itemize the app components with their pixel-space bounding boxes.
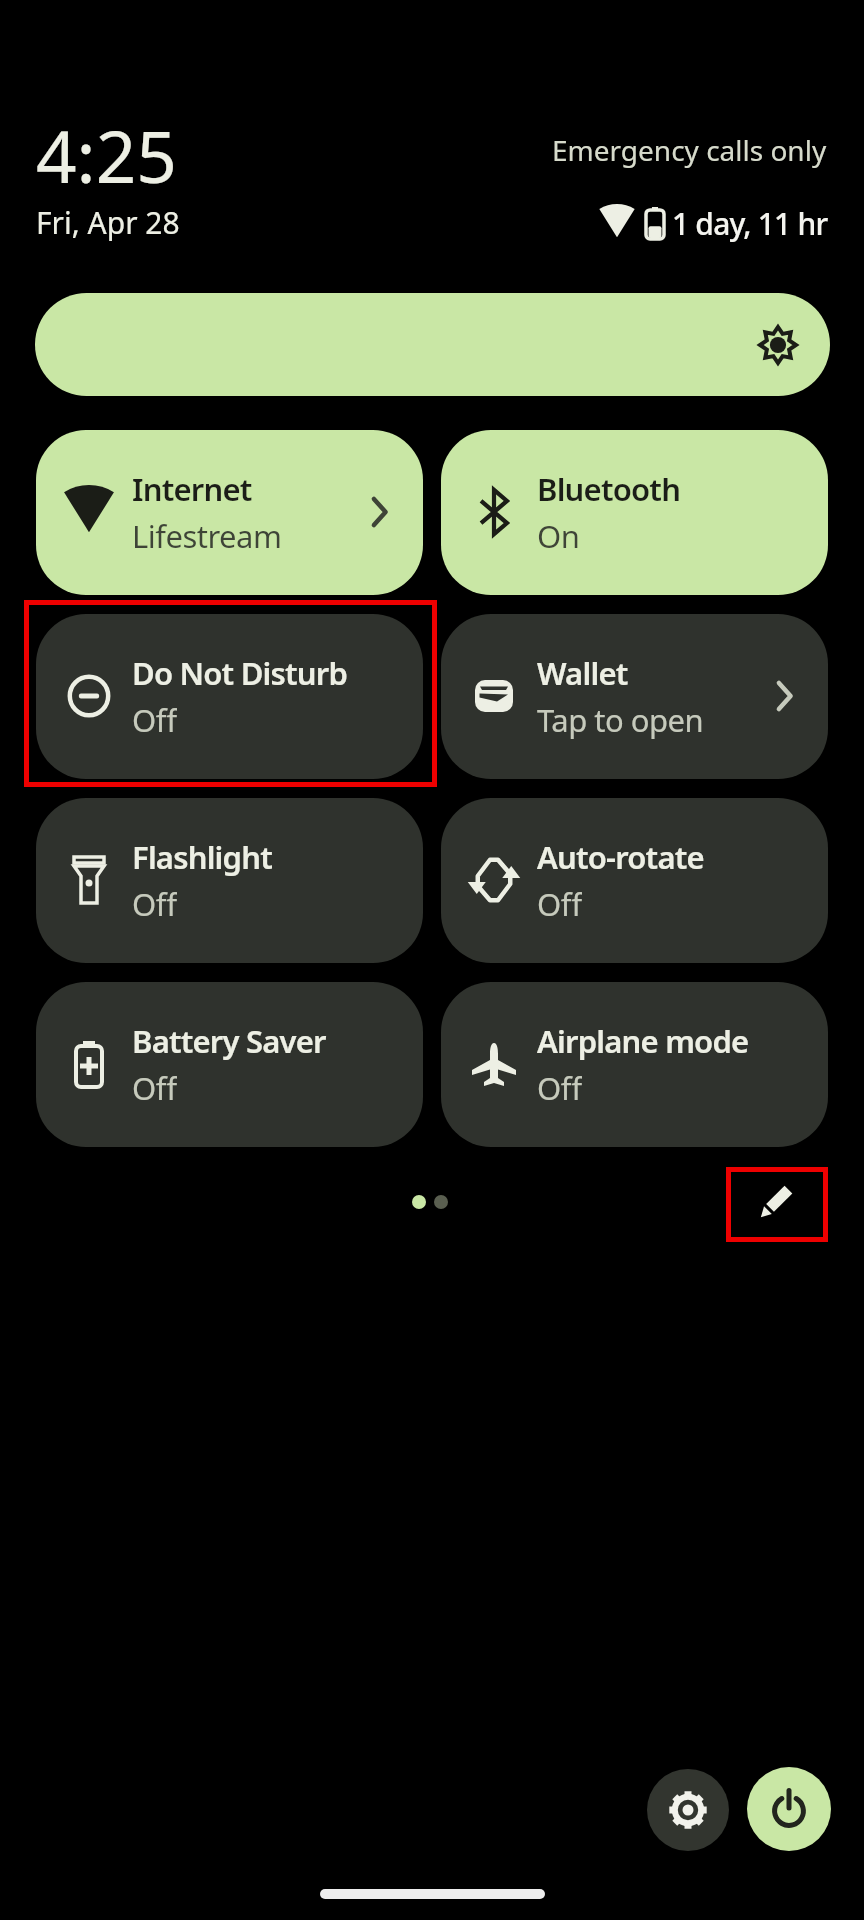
- staticText: Fri, Apr 28: [36, 202, 180, 242]
- button[interactable]: Do Not Disturb: [36, 614, 423, 779]
- staticText: 1 day, 11 hr: [672, 203, 828, 244]
- staticText: Battery Saver: [132, 1020, 326, 1062]
- staticText: Flashlight: [132, 836, 272, 878]
- staticText: Off: [132, 1067, 177, 1107]
- staticText: Lifestream: [132, 515, 282, 555]
- button[interactable]: Bluetooth: [441, 430, 828, 595]
- staticText: Bluetooth: [537, 468, 681, 510]
- staticText: Airplane mode: [537, 1020, 749, 1062]
- button[interactable]: Internet: [36, 430, 423, 595]
- staticText: Tap to open: [537, 699, 704, 739]
- button[interactable]: Wallet: [441, 614, 828, 779]
- button[interactable]: [647, 1769, 729, 1851]
- staticText: Wallet: [537, 652, 628, 694]
- staticText: Do Not Disturb: [132, 652, 348, 694]
- staticText: Off: [132, 883, 177, 923]
- button[interactable]: Airplane mode: [441, 982, 828, 1147]
- staticText: Auto-rotate: [537, 836, 704, 878]
- staticText: 4:25: [36, 107, 177, 193]
- button[interactable]: Auto-rotate: [441, 798, 828, 963]
- staticText: On: [537, 515, 580, 555]
- staticText: Off: [132, 699, 177, 739]
- button[interactable]: [747, 1767, 831, 1851]
- staticText: Off: [537, 883, 582, 923]
- button[interactable]: [35, 293, 830, 396]
- button[interactable]: Battery Saver: [36, 982, 423, 1147]
- button[interactable]: [751, 1179, 799, 1227]
- staticText: Off: [537, 1067, 582, 1107]
- staticText: Internet: [132, 468, 252, 510]
- staticText: Emergency calls only: [552, 131, 827, 169]
- button[interactable]: Flashlight: [36, 798, 423, 963]
